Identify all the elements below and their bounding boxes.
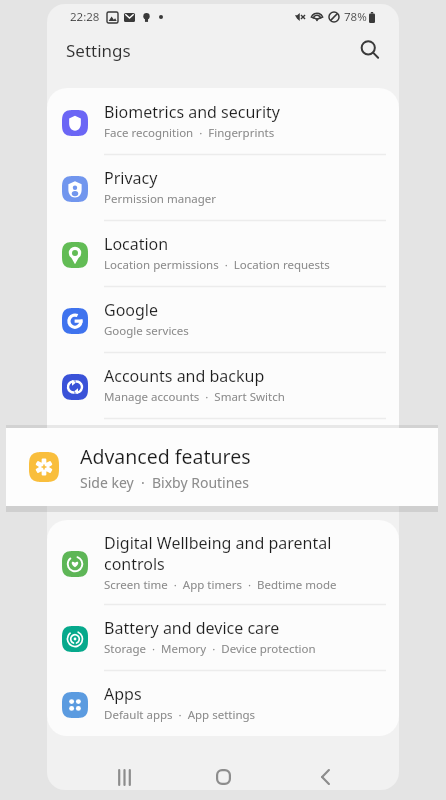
staticText: Advanced features — [80, 443, 251, 470]
staticText: Advanced features — [104, 431, 244, 453]
button[interactable]: Recents — [104, 759, 144, 790]
staticText: Manage accounts · Smart Switch — [104, 389, 285, 405]
button[interactable]: Location — [47, 220, 399, 286]
staticText: Google — [104, 299, 159, 321]
button[interactable]: Battery and device care — [47, 604, 399, 670]
staticText: Biometrics and security — [104, 101, 281, 123]
button[interactable]: Home — [203, 759, 243, 790]
staticText: Screen time · App timers · Bedtime mode — [104, 577, 337, 593]
button[interactable]: Apps — [47, 670, 399, 736]
staticText: Location — [104, 233, 169, 255]
button[interactable]: Advanced features — [47, 418, 399, 484]
button[interactable]: Search — [350, 30, 390, 70]
staticText: Default apps · App settings — [104, 707, 256, 723]
button[interactable]: Digital Wellbeing and parental controls — [47, 520, 399, 604]
staticText: Permission manager — [104, 191, 217, 207]
staticText: Accounts and backup — [104, 365, 265, 387]
staticText: Digital Wellbeing and parental controls — [104, 532, 352, 575]
button[interactable]: Accounts and backup — [47, 352, 399, 418]
staticText: Settings — [66, 39, 131, 62]
staticText: Google services — [104, 323, 189, 339]
staticText: Side key · Bixby Routines — [104, 455, 243, 471]
button[interactable]: Back — [302, 759, 342, 790]
staticText: Battery and device care — [104, 617, 280, 639]
staticText: Privacy — [104, 167, 158, 189]
button[interactable]: Google — [47, 286, 399, 352]
staticText: Storage · Memory · Device protection — [104, 641, 316, 657]
staticText: Apps — [104, 683, 142, 705]
button[interactable]: Privacy — [47, 154, 399, 220]
staticText: Location permissions · Location requests — [104, 257, 330, 273]
staticText: Face recognition · Fingerprints — [104, 125, 275, 141]
button[interactable]: Advanced features — [6, 428, 438, 506]
staticText: Side key · Bixby Routines — [80, 473, 249, 492]
button[interactable]: Biometrics and security — [47, 88, 399, 154]
staticText: 78% — [344, 9, 367, 25]
staticText: 22:28 — [70, 9, 100, 25]
